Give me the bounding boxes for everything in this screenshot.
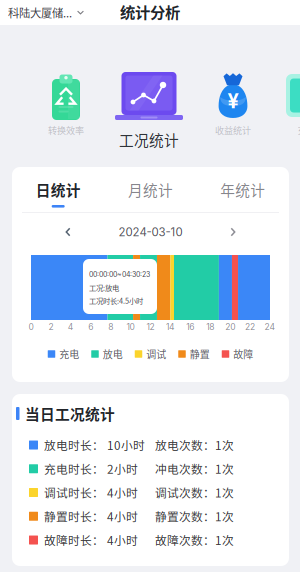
staticText: 放电时长： 10小时	[44, 436, 145, 453]
staticText: 放电	[103, 347, 123, 361]
staticText: 调试	[146, 347, 166, 361]
button[interactable]: 转换效率	[27, 25, 105, 145]
staticText: 调试次数：1次	[155, 484, 234, 501]
staticText: 静置次数：1次	[155, 508, 234, 525]
staticText: 充	[297, 123, 300, 136]
staticText: 日统计	[36, 179, 81, 200]
staticText: 充电	[59, 347, 79, 361]
button[interactable]: 日统计	[12, 179, 104, 223]
staticText: 静置时长： 4小时	[44, 508, 138, 525]
staticText: 调试时长： 4小时	[44, 484, 138, 501]
staticText: 2024-03-10	[118, 225, 182, 239]
staticText: 12	[146, 322, 154, 332]
button[interactable]: 下一日	[213, 219, 253, 245]
staticText: 8	[108, 322, 113, 332]
staticText: 14	[166, 322, 175, 332]
staticText: 00:00:00~04:30:23	[89, 270, 150, 279]
staticText: 工况统计	[119, 129, 179, 150]
staticText: 故障次数：1次	[155, 531, 234, 548]
staticText: 0	[28, 322, 33, 332]
staticText: 放电次数：1次	[155, 436, 234, 453]
button[interactable]: 科陆大厦储...	[0, 0, 90, 25]
button[interactable]: 年统计	[197, 179, 289, 223]
staticText: 收益统计	[215, 123, 251, 136]
staticText: 静置	[190, 347, 210, 361]
staticText: 20	[225, 322, 235, 332]
staticText: 24	[264, 322, 275, 332]
staticText: 故障	[233, 347, 253, 361]
staticText: 16	[186, 322, 194, 332]
staticText: 年统计	[220, 179, 265, 200]
staticText: ¥	[227, 89, 238, 113]
button[interactable]: ¥	[194, 25, 272, 145]
button[interactable]: 月统计	[104, 179, 197, 223]
staticText: 2	[48, 322, 53, 332]
staticText: 当日工况统计	[25, 403, 115, 424]
staticText: 月统计	[128, 179, 173, 200]
button[interactable]: 工况统计	[109, 25, 189, 155]
staticText: 4	[68, 322, 74, 332]
staticText: 工况:放电	[89, 282, 119, 293]
button[interactable]: 充	[286, 25, 300, 145]
staticText: 统计分析	[120, 0, 180, 23]
staticText: 故障时长： 4小时	[44, 531, 138, 548]
staticText: 18	[206, 322, 214, 332]
staticText: 转换效率	[48, 123, 84, 136]
staticText: 充电时长： 2小时	[44, 460, 138, 477]
staticText: 工况时长:4.5小时	[89, 295, 143, 306]
staticText: 科陆大厦储...	[8, 4, 72, 21]
staticText: 22	[245, 322, 255, 332]
button[interactable]: 上一日	[48, 219, 88, 245]
staticText: 冲电次数：1次	[155, 460, 234, 477]
staticText: 6	[88, 322, 93, 332]
staticText: 10	[127, 322, 135, 332]
